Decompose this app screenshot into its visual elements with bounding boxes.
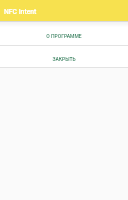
staticText: ЗАКРЫТЬ [0, 56, 128, 62]
button[interactable]: О ПРОГРАММЕ [0, 21, 128, 45]
button[interactable]: ЗАКРЫТЬ [0, 45, 128, 67]
staticText: О ПРОГРАММЕ [0, 33, 128, 39]
staticText: NFC Intent [4, 8, 37, 16]
